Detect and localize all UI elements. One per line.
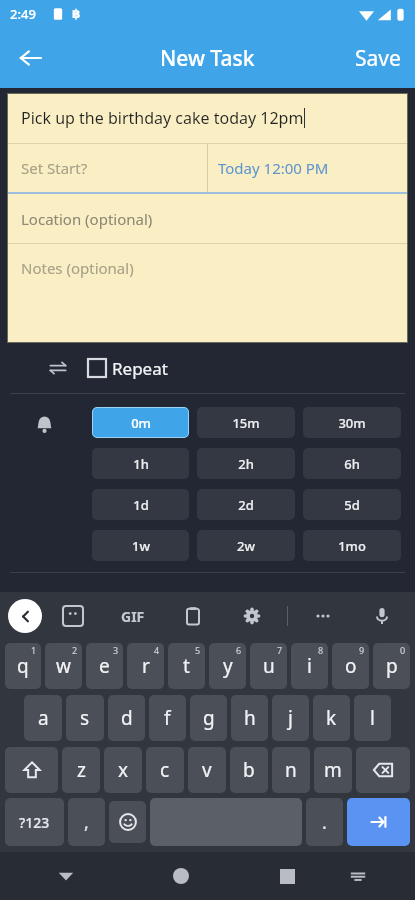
staticText: k [326, 705, 337, 731]
button[interactable]: Shift [5, 747, 58, 793]
staticText: u [263, 653, 275, 679]
button[interactable]: m [314, 747, 352, 793]
button[interactable]: l [354, 695, 391, 741]
staticText: Repeat [112, 357, 168, 380]
button[interactable]: 6h [303, 448, 401, 479]
staticText: s [80, 705, 90, 731]
button[interactable]: Save [341, 34, 415, 83]
button[interactable]: u [250, 643, 287, 689]
button[interactable]: k [313, 695, 350, 741]
button[interactable]: Clipboard [176, 599, 210, 633]
staticText: 3 [113, 644, 119, 656]
staticText: 8 [318, 644, 324, 656]
button[interactable]: o [332, 643, 369, 689]
staticText: a [38, 705, 49, 731]
staticText: Today 12:00 PM [218, 158, 329, 178]
button[interactable]: Settings [235, 599, 269, 633]
button[interactable]: Recents [265, 854, 309, 898]
button[interactable]: , [68, 798, 105, 846]
staticText: w [56, 653, 71, 679]
button[interactable]: p [373, 643, 410, 689]
button[interactable]: a [24, 695, 62, 741]
staticText: 0m [131, 414, 151, 432]
button[interactable]: w [45, 643, 82, 689]
button[interactable]: f [149, 695, 186, 741]
staticText: r [142, 653, 150, 679]
button[interactable]: ?123 [5, 798, 64, 846]
button[interactable]: 2w [197, 530, 295, 561]
button[interactable]: More options [306, 599, 340, 633]
button[interactable]: c [146, 747, 184, 793]
button[interactable]: h [231, 695, 268, 741]
staticText: 5 [195, 644, 201, 656]
staticText: 2w [237, 537, 255, 555]
staticText: i [307, 653, 312, 679]
button[interactable]: Voice input [365, 599, 399, 633]
button[interactable]: v [188, 747, 226, 793]
staticText: . [322, 810, 327, 835]
button[interactable]: t [168, 643, 205, 689]
staticText: 2 [72, 644, 78, 656]
button[interactable]: 1w [92, 530, 189, 561]
button[interactable]: Stickers [56, 599, 90, 633]
button[interactable]: Home [159, 854, 203, 898]
button[interactable]: 30m [303, 407, 401, 438]
button[interactable]: Emoji [109, 801, 146, 843]
button[interactable]: z [62, 747, 100, 793]
button[interactable]: Expand toolbar [8, 599, 42, 633]
button[interactable]: 1d [92, 489, 189, 520]
staticText: ?123 [19, 813, 50, 832]
button[interactable]: y [209, 643, 246, 689]
staticText: m [324, 757, 342, 783]
button[interactable]: g [190, 695, 227, 741]
staticText: 4 [154, 644, 160, 656]
button[interactable]: Hide keyboard [336, 854, 380, 898]
staticText: 2d [238, 496, 254, 514]
button[interactable]: GIF [115, 601, 151, 632]
staticText: 2:49 [10, 5, 36, 23]
button[interactable]: Notes (optional) [7, 244, 408, 343]
staticText: 9 [359, 644, 365, 656]
staticText: p [386, 653, 398, 679]
staticText: 1d [133, 496, 149, 514]
button[interactable]: Repeat [0, 343, 415, 393]
button[interactable]: Set Start? [7, 144, 207, 192]
button[interactable]: 0m [92, 407, 189, 438]
button[interactable]: Today 12:00 PM [208, 144, 408, 192]
staticText: 1mo [338, 537, 366, 555]
button[interactable]: 5d [303, 489, 401, 520]
button[interactable]: 1h [92, 448, 189, 479]
staticText: c [160, 757, 170, 783]
button[interactable]: q [5, 643, 41, 689]
button[interactable]: s [66, 695, 104, 741]
staticText: 0 [400, 644, 406, 656]
button[interactable]: r [127, 643, 164, 689]
staticText: 2h [238, 455, 254, 473]
button[interactable]: Next [347, 798, 410, 846]
button[interactable]: n [272, 747, 310, 793]
button[interactable]: . [306, 798, 343, 846]
staticText: 30m [338, 414, 366, 432]
staticText: ฿ [72, 7, 81, 21]
button[interactable]: 1mo [303, 530, 401, 561]
button[interactable]: 2d [197, 489, 295, 520]
staticText: f [164, 705, 171, 731]
button[interactable]: Back [8, 36, 52, 80]
button[interactable]: Backspace [356, 747, 410, 793]
button[interactable]: 2h [197, 448, 295, 479]
button[interactable]: Back [44, 854, 88, 898]
staticText: Save [355, 44, 401, 73]
button[interactable]: Location (optional) [7, 194, 408, 243]
button[interactable]: b [230, 747, 268, 793]
button[interactable]: e [86, 643, 123, 689]
button[interactable]: x [104, 747, 142, 793]
button[interactable]: Pick up the birthday cake today 12pm [7, 93, 408, 143]
button[interactable]: d [108, 695, 145, 741]
staticText: o [345, 653, 357, 679]
staticText: h [244, 705, 256, 731]
button[interactable]: j [272, 695, 309, 741]
staticText: t [183, 653, 190, 679]
button[interactable]: 15m [197, 407, 295, 438]
button[interactable]: i [291, 643, 328, 689]
